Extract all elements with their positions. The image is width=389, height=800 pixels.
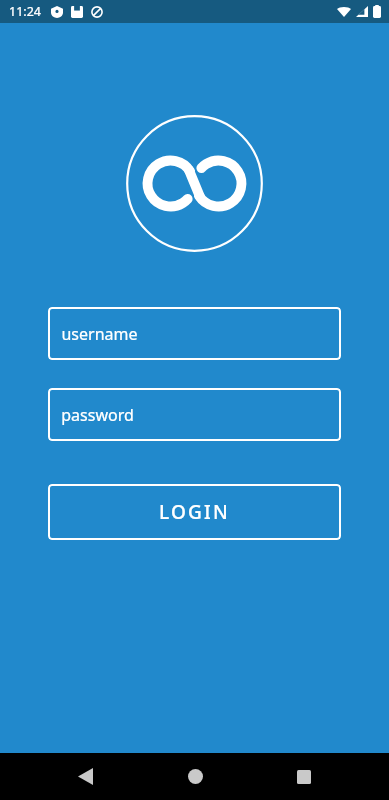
button[interactable]: Recent apps xyxy=(280,753,328,800)
button[interactable]: Home xyxy=(171,753,219,800)
staticText: 11:24 xyxy=(9,3,41,20)
staticText: password xyxy=(61,404,134,426)
button[interactable]: password xyxy=(48,388,341,441)
button[interactable]: Back xyxy=(61,753,109,800)
staticText: username xyxy=(61,323,138,345)
staticText: LOGIN xyxy=(159,499,230,525)
button[interactable]: username xyxy=(48,307,341,360)
button[interactable]: LOGIN xyxy=(48,484,341,540)
